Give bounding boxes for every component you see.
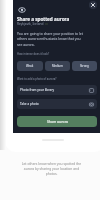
button[interactable]: Take a photo bbox=[17, 99, 97, 109]
button[interactable]: Weak bbox=[17, 61, 43, 71]
button[interactable]: Close bbox=[89, 1, 97, 9]
staticText: Share aurora bbox=[47, 119, 68, 124]
button[interactable]: Share aurora bbox=[17, 116, 97, 127]
button[interactable]: Photo from your library bbox=[17, 85, 97, 95]
staticText: Photo from your library bbox=[20, 88, 55, 92]
staticText: Take a photo bbox=[20, 102, 39, 106]
staticText: Strong bbox=[80, 64, 89, 68]
staticText: Want to add a photo of aurora? bbox=[17, 77, 57, 81]
staticText: How intense does it look? bbox=[17, 52, 50, 56]
staticText: Let others know when you spotted the aur… bbox=[21, 161, 82, 176]
staticText: Medium bbox=[52, 64, 63, 68]
staticText: Weak bbox=[26, 64, 34, 68]
staticText: Share a spotted aurora bbox=[17, 16, 70, 22]
staticText: Reykjavik, Iceland bbox=[17, 22, 44, 26]
button[interactable]: Medium bbox=[45, 61, 70, 71]
staticText: You are going to share your position to … bbox=[17, 31, 86, 47]
button[interactable]: Strong bbox=[72, 61, 97, 71]
